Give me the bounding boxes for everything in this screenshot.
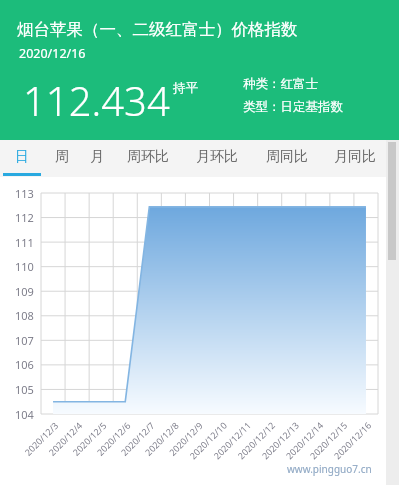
button[interactable]: [43, 140, 81, 177]
button[interactable]: [187, 140, 247, 177]
button[interactable]: [0, 177, 399, 485]
button[interactable]: [78, 140, 116, 177]
button[interactable]: [1, 140, 43, 177]
button[interactable]: [118, 140, 178, 177]
button[interactable]: [257, 140, 317, 177]
button[interactable]: [325, 140, 385, 177]
